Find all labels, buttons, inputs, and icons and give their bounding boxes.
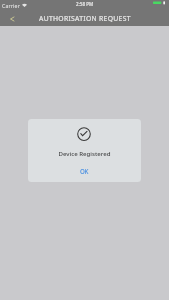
staticText: AUTHORISATION REQUEST: [39, 14, 131, 23]
staticText: OK: [80, 167, 89, 175]
button[interactable]: OK: [28, 164, 141, 178]
staticText: Carrier: [2, 2, 20, 9]
button[interactable]: Back: [4, 11, 20, 26]
staticText: Device Registered: [58, 149, 111, 157]
staticText: 2:58 PM: [76, 1, 94, 7]
